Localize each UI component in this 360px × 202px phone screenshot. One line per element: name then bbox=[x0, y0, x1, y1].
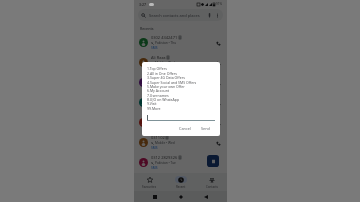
staticText: SMS bbox=[151, 86, 158, 90]
staticText: Mobile • Wed bbox=[155, 81, 175, 85]
staticText: Recents bbox=[140, 26, 154, 31]
staticText: 3:27 bbox=[139, 2, 147, 7]
staticText: SMS bbox=[151, 146, 158, 150]
button[interactable]: Back bbox=[202, 193, 210, 201]
button[interactable]: Call bbox=[214, 39, 222, 47]
staticText: 3.Super 4G Data Offers bbox=[147, 75, 185, 80]
button[interactable]: Saad bbox=[134, 72, 227, 92]
staticText: SMS bbox=[151, 66, 158, 70]
staticText: Pakistan • Tue bbox=[155, 161, 176, 165]
staticText: Mobile • Wed bbox=[155, 61, 175, 65]
button[interactable]: Ali Raza bbox=[134, 52, 227, 72]
staticText: 6.My Account bbox=[147, 88, 170, 93]
staticText: SMS bbox=[151, 106, 158, 110]
button[interactable]: Search contacts and places bbox=[138, 9, 223, 21]
button[interactable]: Cancel bbox=[179, 126, 191, 131]
staticText: 9.Visit bbox=[147, 101, 157, 106]
staticText: Pakistan • Thu bbox=[155, 41, 177, 45]
button[interactable]: Voice search bbox=[206, 12, 212, 18]
button[interactable]: Contacts bbox=[196, 173, 227, 191]
staticText: 5.Make your own Offer bbox=[147, 84, 185, 89]
button[interactable]: 0312 2829326 bbox=[134, 152, 227, 172]
button[interactable]: Home bbox=[177, 193, 185, 201]
staticText: Favourites bbox=[142, 185, 157, 189]
staticText: 2.All in One Offers bbox=[147, 71, 177, 76]
button[interactable]: Recent apps bbox=[151, 193, 159, 201]
button[interactable]: Video call bbox=[207, 155, 219, 167]
staticText: 1.Top Offers bbox=[147, 66, 167, 71]
button[interactable]: Call bbox=[214, 139, 222, 147]
button[interactable]: 0302 4342471 bbox=[134, 32, 227, 52]
staticText: 91% bbox=[216, 2, 222, 6]
staticText: 0312 2829326 bbox=[151, 155, 178, 160]
button[interactable]: Nadeem bbox=[134, 112, 227, 132]
button[interactable]: Kashif bbox=[134, 92, 227, 112]
staticText: Recent bbox=[176, 185, 186, 189]
button[interactable]: Favourites bbox=[134, 173, 165, 191]
staticText: Contacts bbox=[206, 185, 218, 189]
button[interactable]: Call bbox=[214, 79, 222, 87]
button[interactable]: Recent bbox=[165, 173, 196, 191]
staticText: SMS bbox=[151, 46, 158, 50]
staticText: Saad bbox=[151, 75, 161, 80]
button[interactable]: Call bbox=[214, 99, 222, 107]
staticText: 8.UJO on WhatsApp bbox=[147, 97, 180, 102]
staticText: Search contacts and places bbox=[149, 13, 200, 18]
staticText: 031102 bbox=[151, 135, 165, 140]
button[interactable]: Send bbox=[201, 126, 210, 131]
staticText: Mobile • Wed bbox=[155, 141, 175, 145]
staticText: SMS bbox=[151, 166, 158, 170]
staticText: 4.Super Social and SMS Offers bbox=[147, 80, 197, 85]
staticText: Ali Raza bbox=[151, 55, 166, 60]
staticText: 99.More bbox=[147, 106, 161, 111]
staticText: Mobile • Wed bbox=[155, 101, 175, 105]
button[interactable]: Call bbox=[214, 119, 222, 127]
staticText: 7.Usernames bbox=[147, 93, 169, 98]
button[interactable]: Call bbox=[214, 59, 222, 67]
button[interactable]: More options bbox=[214, 12, 220, 18]
staticText: 0302 4342471 bbox=[151, 35, 178, 40]
button[interactable]: 031102 bbox=[134, 132, 227, 152]
staticText: Kashif bbox=[151, 95, 163, 100]
